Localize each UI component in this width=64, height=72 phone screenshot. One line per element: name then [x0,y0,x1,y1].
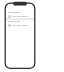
staticText: List item label here [12,23,32,26]
staticText: Section title [8,11,21,14]
button[interactable]: Item icon [6,23,34,27]
button[interactable]: Item icon [6,14,34,18]
staticText: List item label here [12,14,32,17]
other: Item icon [8,15,11,18]
staticText: Section title [8,20,21,23]
other: Item icon [8,24,11,27]
